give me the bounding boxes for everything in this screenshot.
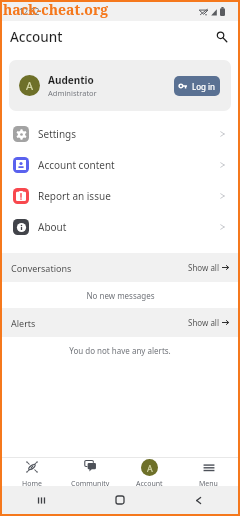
staticText: No new messages <box>86 290 155 301</box>
button[interactable]: Show all <box>188 262 229 273</box>
button[interactable]: Report an issue <box>2 180 238 211</box>
staticText: Home <box>22 479 42 489</box>
staticText: Account <box>10 28 63 46</box>
staticText: About <box>38 220 67 234</box>
staticText: A <box>147 462 153 474</box>
staticText: Audentio <box>48 73 94 87</box>
staticText: Show all <box>188 262 219 273</box>
staticText: 12:02 <box>19 6 40 17</box>
staticText: Alerts <box>11 317 36 329</box>
staticText: Community <box>71 479 110 489</box>
staticText: Administrator <box>48 88 97 98</box>
button[interactable]: Search <box>210 25 234 49</box>
staticText: Report an issue <box>38 189 111 203</box>
button[interactable]: About <box>2 211 238 242</box>
staticText: Show all <box>188 317 219 328</box>
button[interactable]: Settings <box>2 118 238 149</box>
button[interactable]: Log in <box>174 76 220 96</box>
button[interactable]: A <box>120 458 179 486</box>
staticText: Conversations <box>11 262 72 274</box>
staticText: Settings <box>38 127 77 141</box>
button[interactable]: Community <box>61 458 120 486</box>
button[interactable]: Show all <box>188 317 229 328</box>
staticText: hack-cheat.org <box>3 0 109 19</box>
button[interactable]: Home <box>2 458 61 486</box>
button[interactable]: A <box>9 60 231 111</box>
staticText: A <box>26 78 34 93</box>
staticText: Account content <box>38 158 115 172</box>
staticText: Menu <box>199 479 218 489</box>
staticText: Log in <box>192 81 216 92</box>
button[interactable]: Menu <box>179 458 238 486</box>
button[interactable]: Account content <box>2 149 238 180</box>
staticText: You do not have any alerts. <box>69 345 171 356</box>
staticText: Account <box>136 479 163 489</box>
